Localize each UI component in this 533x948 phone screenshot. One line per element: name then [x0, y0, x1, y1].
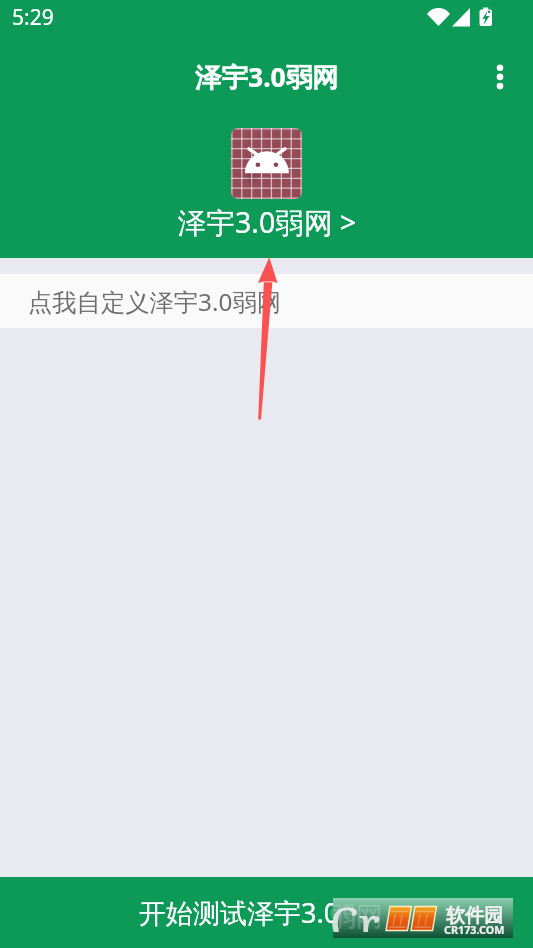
button[interactable]: 泽宇3.0弱网 > — [0, 112, 533, 242]
staticText: 开始测试泽宇3.0弱网 — [139, 894, 394, 931]
staticText: 泽宇3.0弱网 > — [178, 203, 356, 242]
button[interactable]: 开始测试泽宇3.0弱网 — [0, 877, 533, 948]
staticText: 点我自定义泽宇3.0弱网 — [28, 285, 281, 318]
staticText: 软件园 — [446, 904, 503, 928]
staticText: 5:29 — [12, 3, 54, 32]
button[interactable]: 点我自定义泽宇3.0弱网 — [0, 274, 533, 328]
staticText: Cr — [330, 892, 380, 932]
button[interactable]: More options — [476, 53, 524, 101]
staticText: CR173.COM — [444, 922, 505, 937]
staticText: 弱网 — [329, 900, 383, 934]
staticText: 泽宇3.0弱网 — [195, 59, 339, 95]
